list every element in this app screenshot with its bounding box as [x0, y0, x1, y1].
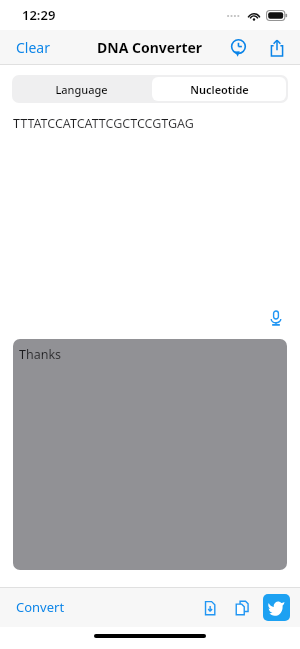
staticText: Thanks	[19, 346, 62, 363]
button[interactable]: Copy	[230, 596, 254, 620]
staticText: TTTATCCATCATTCGCTCCGTGAG	[13, 115, 194, 132]
button[interactable]: Convert	[10, 594, 71, 620]
button[interactable]: Dictate	[262, 304, 290, 332]
button[interactable]: Nucleotide	[152, 77, 286, 101]
button[interactable]: Thanks	[13, 339, 287, 570]
staticText: 12:29	[22, 6, 56, 24]
button[interactable]: Share on Twitter	[263, 594, 290, 621]
button[interactable]: Clear	[10, 34, 56, 61]
button[interactable]: History	[226, 35, 252, 61]
button[interactable]: Save file	[198, 596, 222, 620]
staticText: Nucleotide	[190, 82, 249, 97]
staticText: Language	[55, 82, 108, 97]
button[interactable]: Language	[12, 75, 150, 103]
button[interactable]: Share	[264, 35, 290, 61]
staticText: DNA Converter	[97, 38, 203, 57]
